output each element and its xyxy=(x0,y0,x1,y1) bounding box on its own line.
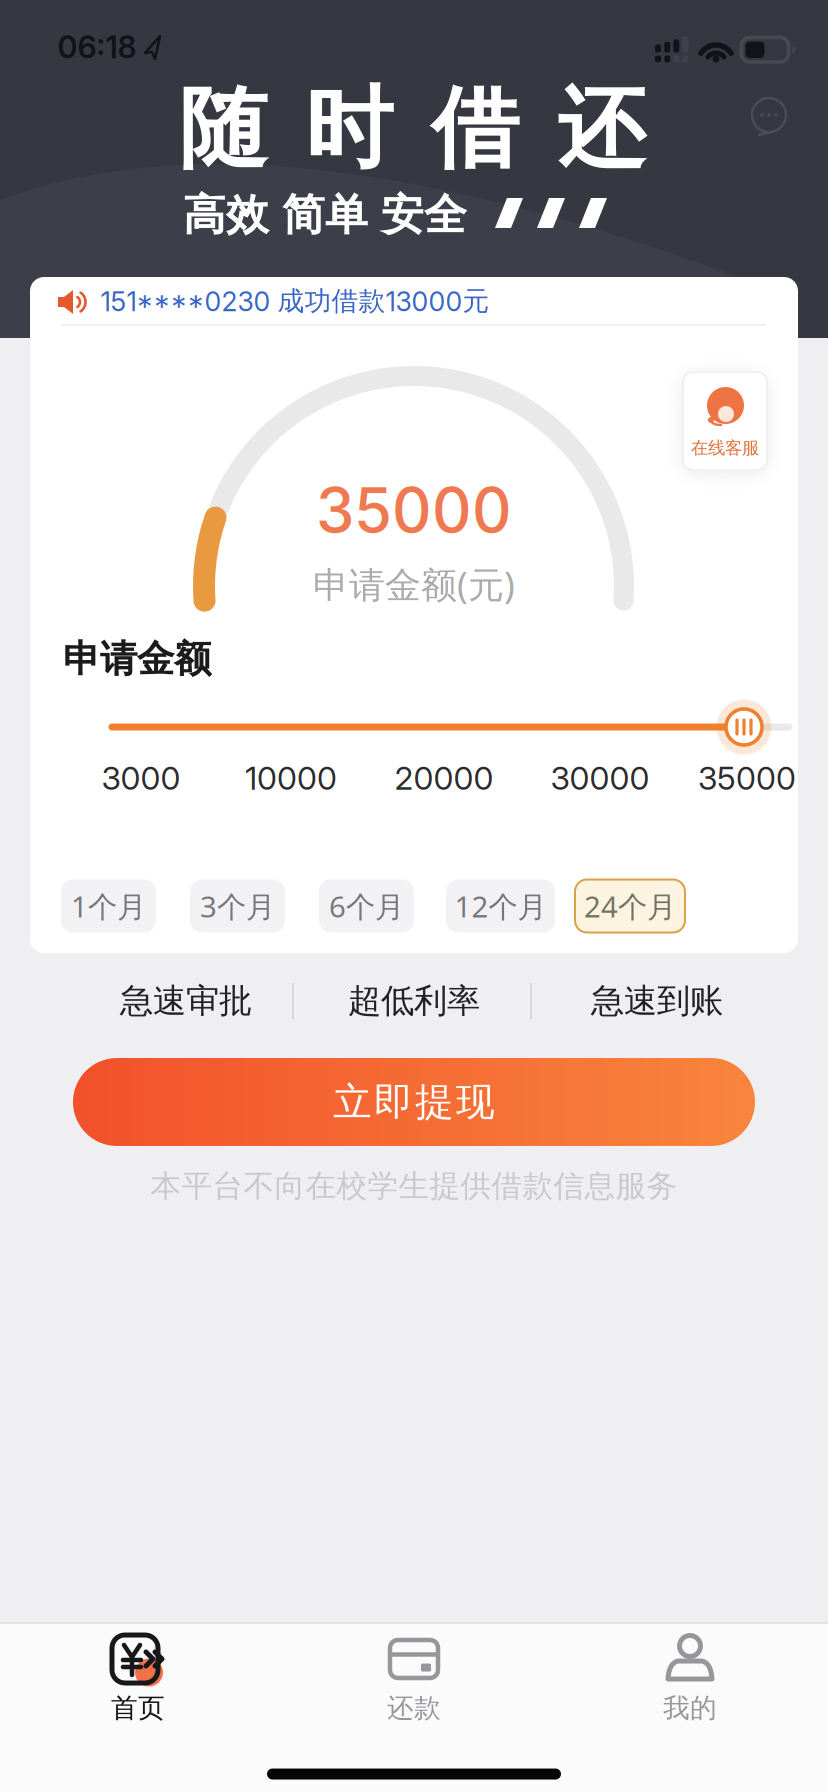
button[interactable]: 我的 xyxy=(610,1628,770,1732)
staticText: 1个月 xyxy=(71,886,146,925)
staticText: 申请金额(元) xyxy=(313,560,515,608)
staticText: 申请金额 xyxy=(63,636,211,682)
staticText: 35000 xyxy=(316,473,512,547)
staticText: 12个月 xyxy=(454,886,546,925)
button[interactable]: 在线客服 xyxy=(683,372,767,470)
staticText: 还款 xyxy=(387,1692,441,1724)
button[interactable]: 客服消息 xyxy=(747,95,791,139)
staticText: 3个月 xyxy=(200,886,275,925)
staticText: 151****0230 成功借款13000元 xyxy=(100,284,489,318)
button[interactable]: 6个月 xyxy=(319,879,414,932)
staticText: 20000 xyxy=(394,759,493,797)
button[interactable]: 还款 xyxy=(334,1628,494,1732)
staticText: 10000 xyxy=(245,759,337,797)
staticText: 30000 xyxy=(550,759,649,797)
staticText: 6个月 xyxy=(329,886,404,925)
button[interactable]: 24个月 xyxy=(575,879,685,932)
staticText: 超低利率 xyxy=(348,980,480,1021)
button[interactable]: 立即提现 xyxy=(73,1058,755,1146)
staticText: 首页 xyxy=(111,1692,165,1724)
staticText: 3000 xyxy=(101,759,180,797)
staticText: 06:18 xyxy=(57,28,136,65)
staticText: 本平台不向在校学生提供借款信息服务 xyxy=(150,1167,677,1205)
staticText: 立即提现 xyxy=(333,1078,495,1126)
button[interactable]: 12个月 xyxy=(446,879,555,932)
button[interactable]: 首页 xyxy=(58,1628,218,1732)
button[interactable]: 调整申请金额 xyxy=(716,699,772,755)
staticText: 24个月 xyxy=(584,886,676,925)
button[interactable]: 1个月 xyxy=(61,879,156,932)
staticText: 在线客服 xyxy=(691,437,759,459)
staticText: 我的 xyxy=(663,1692,717,1724)
staticText: 急速到账 xyxy=(591,980,723,1021)
staticText: 急速审批 xyxy=(120,980,252,1021)
staticText: 随时借还 xyxy=(179,75,645,183)
button[interactable]: 3个月 xyxy=(190,879,285,932)
staticText: 35000 xyxy=(698,759,796,797)
staticText: 高效 简单 安全 xyxy=(183,189,467,241)
